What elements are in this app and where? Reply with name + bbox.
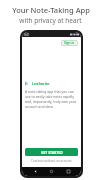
staticText: with privacy at heart: [19, 16, 82, 25]
staticText: Your Note-Taking App: [12, 5, 90, 15]
button[interactable]: Continue without an account: [22, 159, 81, 163]
other: Notebook icon: [25, 81, 30, 86]
staticText: A note-taking app that you can use to ea…: [25, 89, 78, 109]
staticText: Sign in: [64, 41, 75, 45]
button[interactable]: Home: [48, 168, 55, 175]
button[interactable]: GET STARTED: [25, 148, 78, 156]
button[interactable]: Sign in: [61, 40, 78, 46]
staticText: 9:41: [24, 33, 30, 37]
button[interactable]: Back: [32, 168, 39, 175]
staticText: GET STARTED: [41, 150, 63, 155]
staticText: Continue without an account: [31, 159, 72, 163]
staticText: Leafwrite: [32, 81, 50, 86]
button[interactable]: Recents: [65, 168, 72, 175]
